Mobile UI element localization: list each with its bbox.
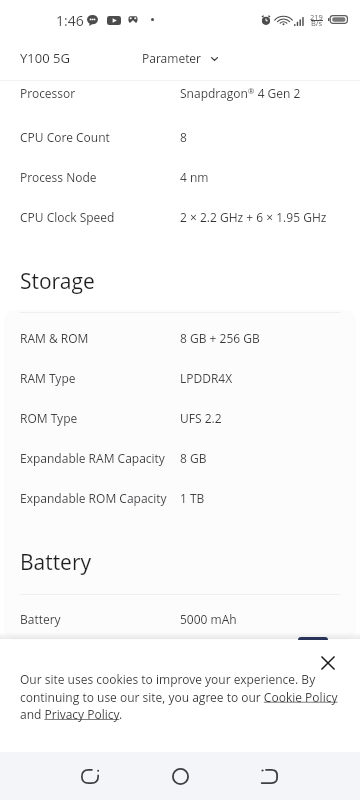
- button[interactable]: Expandable ROM Capacity: [0, 478, 360, 518]
- staticText: CPU Core Count: [20, 129, 110, 145]
- staticText: UFS 2.2: [180, 410, 222, 426]
- staticText: B/s: [311, 18, 323, 28]
- staticText: RAM & ROM: [20, 330, 89, 346]
- button[interactable]: Battery: [0, 599, 360, 639]
- button[interactable]: RAM & ROM: [0, 318, 360, 358]
- staticText: Parameter: [142, 50, 201, 66]
- staticText: LPDDR4X: [180, 370, 233, 386]
- staticText: Expandable ROM Capacity: [20, 490, 167, 506]
- button[interactable]: Parameter: [142, 46, 218, 70]
- button[interactable]: CPU Core Count: [0, 117, 360, 157]
- button[interactable]: Process Node: [0, 157, 360, 197]
- staticText: Processor: [20, 85, 76, 101]
- staticText: Process Node: [20, 169, 97, 185]
- staticText: 8: [180, 129, 187, 145]
- staticText: 8 GB: [180, 450, 207, 466]
- button[interactable]: RAM Type: [0, 358, 360, 398]
- staticText: Y100 5G: [20, 49, 70, 67]
- staticText: 219: [310, 12, 323, 22]
- staticText: CPU Clock Speed: [20, 209, 115, 225]
- staticText: 1:46: [56, 11, 84, 30]
- button[interactable]: Home: [156, 752, 204, 800]
- staticText: Storage: [20, 267, 95, 296]
- staticText: 2 × 2.2 GHz + 6 × 1.95 GHz: [180, 209, 327, 225]
- staticText: RAM Type: [20, 370, 76, 386]
- button[interactable]: Back: [66, 752, 114, 800]
- staticText: Battery: [20, 548, 92, 577]
- button[interactable]: CPU Clock Speed: [0, 197, 360, 237]
- staticText: 1 TB: [180, 490, 205, 506]
- staticText: Snapdragon® 4 Gen 2: [180, 85, 301, 101]
- button[interactable]: Close: [315, 649, 341, 675]
- staticText: Our site uses cookies to improve your ex…: [20, 671, 345, 722]
- button[interactable]: Expandable RAM Capacity: [0, 438, 360, 478]
- staticText: Battery: [20, 611, 61, 627]
- staticText: 8 GB + 256 GB: [180, 330, 260, 346]
- button[interactable]: Recents: [245, 752, 293, 800]
- button[interactable]: Y100 5G: [10, 44, 70, 72]
- staticText: Expandable RAM Capacity: [20, 450, 165, 466]
- staticText: 5000 mAh: [180, 611, 237, 627]
- button[interactable]: ROM Type: [0, 398, 360, 438]
- staticText: ROM Type: [20, 410, 78, 426]
- button[interactable]: Processor: [0, 73, 360, 113]
- staticText: 4 nm: [180, 169, 209, 185]
